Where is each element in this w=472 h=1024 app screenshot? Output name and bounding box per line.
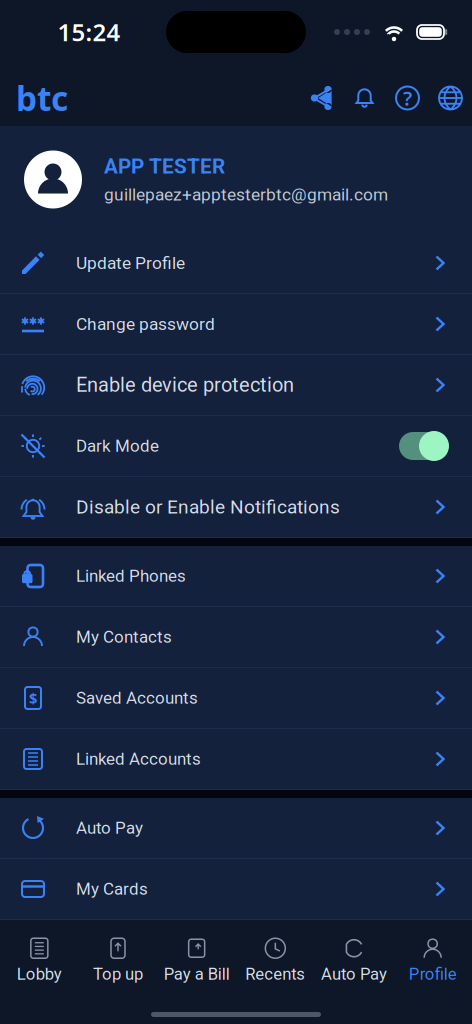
button[interactable]: My Cards — [0, 859, 472, 920]
staticText: Saved Accounts — [76, 688, 198, 708]
button[interactable]: Notifications — [343, 76, 386, 120]
button[interactable]: Linked Accounts — [0, 729, 472, 790]
button[interactable]: My Contacts — [0, 607, 472, 668]
staticText: Dark Mode — [76, 436, 159, 456]
button[interactable]: $ — [0, 668, 472, 729]
staticText: My Cards — [76, 879, 148, 899]
button[interactable]: Linked Phones — [0, 546, 472, 607]
button[interactable]: Enable device protection — [0, 355, 472, 416]
staticText: 15:24 — [57, 16, 120, 48]
button[interactable]: Profile — [393, 932, 472, 988]
staticText: Recents — [245, 964, 305, 984]
staticText: My Contacts — [76, 627, 172, 647]
button[interactable]: Top up — [79, 932, 157, 988]
staticText: Profile — [409, 964, 457, 984]
staticText: Linked Accounts — [76, 749, 201, 769]
staticText: Auto Pay — [321, 964, 387, 984]
button[interactable]: Lobby — [0, 932, 79, 988]
staticText: Auto Pay — [76, 818, 143, 838]
staticText: Enable device protection — [76, 373, 294, 397]
staticText: Update Profile — [76, 253, 185, 273]
button[interactable]: Change password — [0, 294, 472, 355]
button[interactable]: Auto Pay — [0, 798, 472, 859]
button[interactable]: Recents — [236, 932, 315, 988]
staticText: Linked Phones — [76, 566, 186, 586]
button[interactable]: Disable or Enable Notifications — [0, 477, 472, 538]
staticText: Top up — [93, 964, 143, 984]
button[interactable]: Update Profile — [0, 233, 472, 294]
button[interactable]: Auto Pay — [315, 932, 393, 988]
button[interactable]: Language — [429, 76, 472, 120]
staticText: Pay a Bill — [164, 964, 230, 984]
staticText: ? — [403, 85, 412, 111]
staticText: $ — [29, 688, 37, 708]
staticText: APP TESTER — [104, 154, 225, 178]
button[interactable]: Help — [386, 76, 429, 120]
staticText: Disable or Enable Notifications — [76, 496, 340, 518]
staticText: Change password — [76, 314, 215, 334]
button[interactable]: Pay a Bill — [157, 932, 236, 988]
staticText: btc — [16, 76, 68, 120]
staticText: Lobby — [17, 964, 62, 984]
staticText: guillepaez+apptesterbtc@gmail.com — [104, 184, 388, 205]
button[interactable]: Dark Mode — [0, 416, 472, 477]
button[interactable]: Share — [300, 76, 343, 120]
